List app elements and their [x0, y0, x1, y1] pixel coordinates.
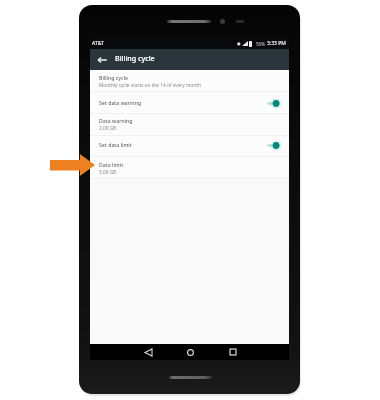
- staticText: Billing cycle: [99, 74, 129, 81]
- button[interactable]: Billing cycle: [90, 70, 289, 92]
- staticText: Set data limit: [99, 141, 132, 148]
- button[interactable]: Home: [181, 344, 199, 360]
- staticText: Data warning: [99, 117, 133, 124]
- staticText: Billing cycle: [115, 53, 155, 63]
- staticText: AT&T: [92, 40, 104, 47]
- button[interactable]: Data limit: [90, 156, 289, 179]
- staticText: Data limit: [99, 161, 124, 168]
- staticText: 3:33 PM: [267, 40, 286, 47]
- button[interactable]: Back: [139, 344, 157, 360]
- button[interactable]: Recent apps: [224, 344, 242, 360]
- button[interactable]: Data warning: [90, 113, 289, 135]
- staticText: 56%: [256, 41, 265, 47]
- button[interactable]: Set data warning: [90, 92, 289, 114]
- button[interactable]: Navigate up: [95, 53, 108, 66]
- staticText: Set data warning: [99, 99, 142, 106]
- button[interactable]: Set data limit: [90, 135, 289, 156]
- staticText: 2.00 GB: [99, 125, 117, 131]
- staticText: 5.00 GB: [99, 169, 117, 175]
- staticText: Monthly cycle starts on the 14 of every …: [99, 82, 201, 88]
